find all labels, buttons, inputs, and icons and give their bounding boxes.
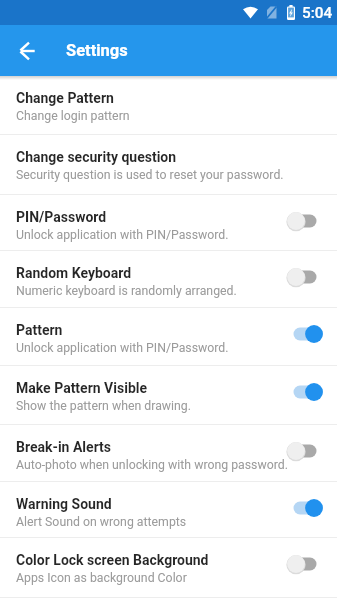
staticText: Pattern — [16, 322, 63, 338]
button[interactable] — [287, 441, 323, 461]
staticText: 5:04 — [302, 4, 333, 22]
button[interactable]: Warning Sound — [0, 482, 337, 538]
button[interactable]: Make Pattern Visible — [0, 366, 337, 425]
button[interactable]: Change Pattern — [0, 76, 337, 135]
staticText: Break-in Alerts — [16, 439, 112, 455]
staticText: Change security question — [16, 149, 177, 165]
staticText: Security question is used to reset your … — [16, 168, 284, 182]
button[interactable] — [287, 211, 323, 231]
staticText: Show the pattern when drawing. — [16, 399, 192, 413]
button[interactable] — [287, 382, 323, 402]
staticText: PIN/Password — [16, 209, 107, 225]
staticText: Warning Sound — [16, 496, 112, 512]
button[interactable]: PIN/Password — [0, 195, 337, 251]
button[interactable]: Change security question — [0, 135, 337, 195]
staticText: Random Keyboard — [16, 265, 132, 281]
staticText: Make Pattern Visible — [16, 380, 148, 396]
staticText: Unlock application with PIN/Password. — [16, 341, 229, 355]
button[interactable]: Break-in Alerts — [0, 425, 337, 482]
button[interactable] — [0, 25, 54, 76]
staticText: Auto-photo when unlocking with wrong pas… — [16, 458, 288, 472]
button[interactable]: Color Lock screen Background — [0, 538, 337, 598]
button[interactable]: Random Keyboard — [0, 251, 337, 308]
staticText: Alert Sound on wrong attempts — [16, 515, 187, 529]
button[interactable] — [287, 324, 323, 344]
staticText: Numeric keyboard is randomly arranged. — [16, 284, 237, 298]
button[interactable] — [287, 554, 323, 574]
staticText: Apps Icon as background Color — [16, 571, 187, 585]
staticText: Change login pattern — [16, 109, 130, 123]
button[interactable] — [287, 498, 323, 518]
staticText: Settings — [66, 41, 128, 60]
staticText: Change Pattern — [16, 90, 114, 106]
staticText: Color Lock screen Background — [16, 552, 209, 568]
staticText: Unlock application with PIN/Password. — [16, 228, 229, 242]
button[interactable] — [287, 267, 323, 287]
button[interactable]: Pattern — [0, 308, 337, 366]
